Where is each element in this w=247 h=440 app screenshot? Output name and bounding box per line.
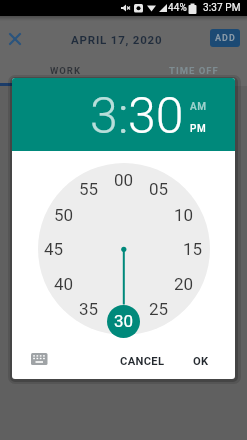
- button[interactable]: ADD: [210, 29, 240, 47]
- staticText: 15: [183, 239, 203, 259]
- button[interactable]: [25, 347, 53, 371]
- staticText: OK: [193, 355, 209, 368]
- staticText: 35: [79, 299, 99, 319]
- button[interactable]: 55: [69, 177, 109, 201]
- staticText: 45: [44, 239, 64, 259]
- button[interactable]: 00: [104, 168, 144, 192]
- button[interactable]: 40: [44, 272, 84, 296]
- button[interactable]: [124, 58, 247, 86]
- staticText: 10: [174, 205, 194, 225]
- button[interactable]: [107, 305, 140, 338]
- staticText: 00: [114, 170, 134, 190]
- staticText: AM: [190, 101, 207, 113]
- button[interactable]: CANCEL: [107, 349, 177, 373]
- staticText: 05: [149, 179, 169, 199]
- button[interactable]: [5, 29, 25, 49]
- staticText: APRIL 17, 2020: [71, 33, 163, 46]
- staticText: WORK: [50, 65, 81, 76]
- staticText: :: [118, 87, 129, 146]
- staticText: 3: [90, 87, 118, 146]
- button[interactable]: 20: [164, 272, 204, 296]
- staticText: 20: [174, 274, 194, 294]
- staticText: TIME OFF: [169, 65, 219, 76]
- staticText: 44%: [168, 2, 187, 14]
- button[interactable]: 15: [173, 237, 213, 261]
- button[interactable]: [0, 58, 123, 86]
- button[interactable]: PM: [178, 121, 218, 137]
- staticText: 30: [128, 87, 184, 146]
- staticText: PM: [190, 123, 207, 135]
- staticText: 30: [114, 311, 134, 331]
- staticText: 55: [79, 179, 99, 199]
- button[interactable]: 30: [116, 81, 196, 151]
- button[interactable]: 45: [34, 237, 74, 261]
- staticText: 50: [54, 205, 74, 225]
- staticText: CANCEL: [120, 355, 165, 368]
- button[interactable]: 10: [164, 203, 204, 227]
- button[interactable]: AM: [178, 99, 218, 115]
- staticText: 40: [54, 274, 74, 294]
- button[interactable]: OK: [181, 349, 221, 373]
- staticText: 3:37 PM: [203, 2, 241, 14]
- button[interactable]: 3: [74, 81, 134, 151]
- staticText: ADD: [215, 33, 236, 44]
- button[interactable]: 05: [139, 177, 179, 201]
- button[interactable]: 35: [69, 297, 109, 321]
- button[interactable]: 25: [139, 297, 179, 321]
- button[interactable]: 50: [44, 203, 84, 227]
- staticText: 25: [149, 299, 169, 319]
